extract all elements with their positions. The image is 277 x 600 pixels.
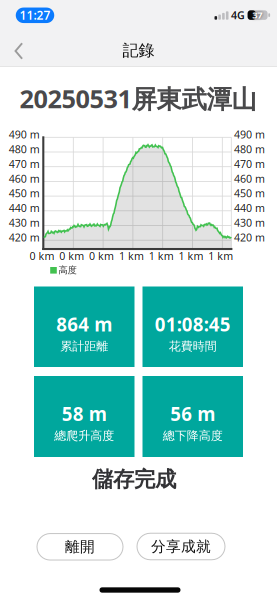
staticText: 0 km <box>29 249 54 263</box>
staticText: 480 m <box>9 142 40 156</box>
staticText: 高度 <box>58 264 76 276</box>
staticText: 分享成就 <box>151 537 211 555</box>
staticText: 58 m <box>62 401 107 426</box>
staticText: 430 m <box>234 215 265 230</box>
staticText: 490 m <box>9 127 40 141</box>
staticText: 440 m <box>9 201 40 215</box>
staticText: 470 m <box>234 157 265 171</box>
staticText: 總下降高度 <box>163 428 223 443</box>
staticText: 490 m <box>234 127 265 141</box>
staticText: 0 km <box>59 249 84 263</box>
staticText: 01:08:45 <box>155 312 231 337</box>
staticText: 0 km <box>89 249 114 263</box>
staticText: 4G <box>231 8 245 22</box>
staticText: 37 <box>252 9 262 21</box>
button[interactable]: 離開 <box>37 533 123 560</box>
staticText: 11:27 <box>19 7 50 23</box>
staticText: 864 m <box>56 312 112 337</box>
staticText: 430 m <box>9 215 40 230</box>
staticText: 450 m <box>234 186 265 200</box>
staticText: 1 km <box>149 249 174 263</box>
staticText: 480 m <box>234 142 265 156</box>
staticText: 離開 <box>65 538 95 556</box>
staticText: 累計距離 <box>60 339 108 353</box>
staticText: 440 m <box>234 201 265 215</box>
staticText: 460 m <box>9 171 40 186</box>
staticText: 20250531屏東武潭山 <box>19 82 256 115</box>
staticText: 記錄 <box>122 41 154 60</box>
staticText: 1 km <box>119 249 144 263</box>
staticText: 420 m <box>9 230 40 244</box>
button[interactable]: 分享成就 <box>137 533 225 560</box>
staticText: 1 km <box>178 249 203 263</box>
staticText: 總爬升高度 <box>54 428 114 443</box>
staticText: 1 km <box>208 249 233 263</box>
staticText: 420 m <box>234 230 265 244</box>
staticText: 花費時間 <box>169 339 217 353</box>
staticText: 儲存完成 <box>92 466 176 493</box>
staticText: 450 m <box>9 186 40 200</box>
staticText: 56 m <box>170 401 215 426</box>
button[interactable]: Back <box>6 34 31 68</box>
staticText: 470 m <box>9 157 40 171</box>
staticText: 460 m <box>234 171 265 186</box>
